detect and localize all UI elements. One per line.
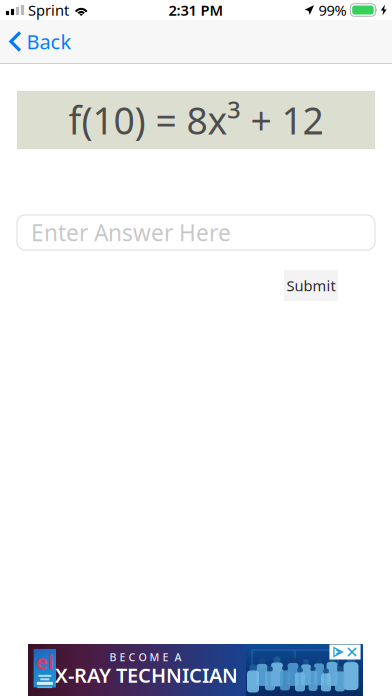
staticText: f(10) = 8x³ + 12: [68, 95, 323, 145]
staticText: X-RAY TECHNICIAN: [55, 662, 238, 688]
staticText: Submit: [286, 276, 335, 295]
staticText: Sprint: [28, 0, 69, 20]
button[interactable]: Advertisement: Become an X-Ray Technicia…: [28, 644, 363, 696]
staticText: B E C O M E A: [109, 650, 181, 664]
button[interactable]: Back: [0, 20, 110, 63]
staticText: Enter Answer Here: [31, 217, 231, 247]
staticText: Back: [26, 28, 71, 55]
button[interactable]: Submit: [284, 270, 338, 301]
staticText: 99%: [318, 0, 346, 20]
staticText: ei: [36, 648, 54, 675]
staticText: 2:31 PM: [168, 0, 223, 20]
